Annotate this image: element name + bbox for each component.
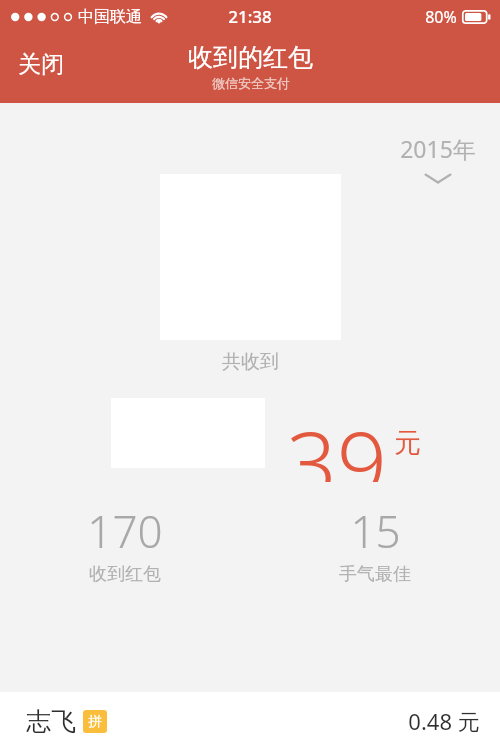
button[interactable]: 170 bbox=[0, 501, 250, 586]
button[interactable]: Select year bbox=[390, 129, 486, 187]
staticText: 微信安全支付 bbox=[212, 75, 290, 91]
button[interactable]: 关闭 bbox=[0, 44, 78, 85]
staticText: 收到的红包 bbox=[188, 42, 313, 73]
staticText: 0.48 元 bbox=[408, 706, 480, 736]
staticText: .39 bbox=[265, 402, 387, 482]
button[interactable]: 15 bbox=[250, 501, 500, 586]
staticText: 170 bbox=[87, 501, 163, 561]
staticText: 2015年 bbox=[400, 133, 476, 164]
staticText: 志飞 bbox=[26, 706, 76, 737]
staticText: 共收到 bbox=[222, 350, 279, 374]
staticText: 15 bbox=[350, 501, 401, 561]
staticText: 拼 bbox=[88, 713, 102, 731]
staticText: 21:38 bbox=[228, 5, 272, 28]
staticText: 中国联通 bbox=[78, 7, 142, 27]
staticText: 收到红包 bbox=[89, 563, 161, 586]
staticText: 手气最佳 bbox=[339, 563, 411, 586]
staticText: 元 bbox=[394, 426, 421, 460]
button[interactable]: 志飞 bbox=[0, 692, 500, 750]
staticText: 80% bbox=[425, 6, 457, 28]
staticText: 关闭 bbox=[18, 50, 64, 79]
